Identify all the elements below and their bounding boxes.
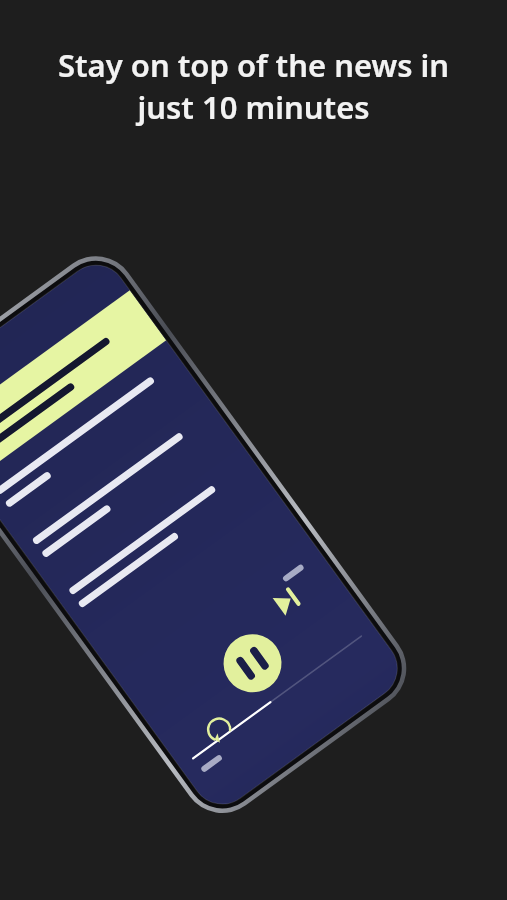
button[interactable]: News player preview: [0, 0, 507, 900]
staticText: Stay on top of the news in just 10 minut…: [34, 44, 473, 128]
